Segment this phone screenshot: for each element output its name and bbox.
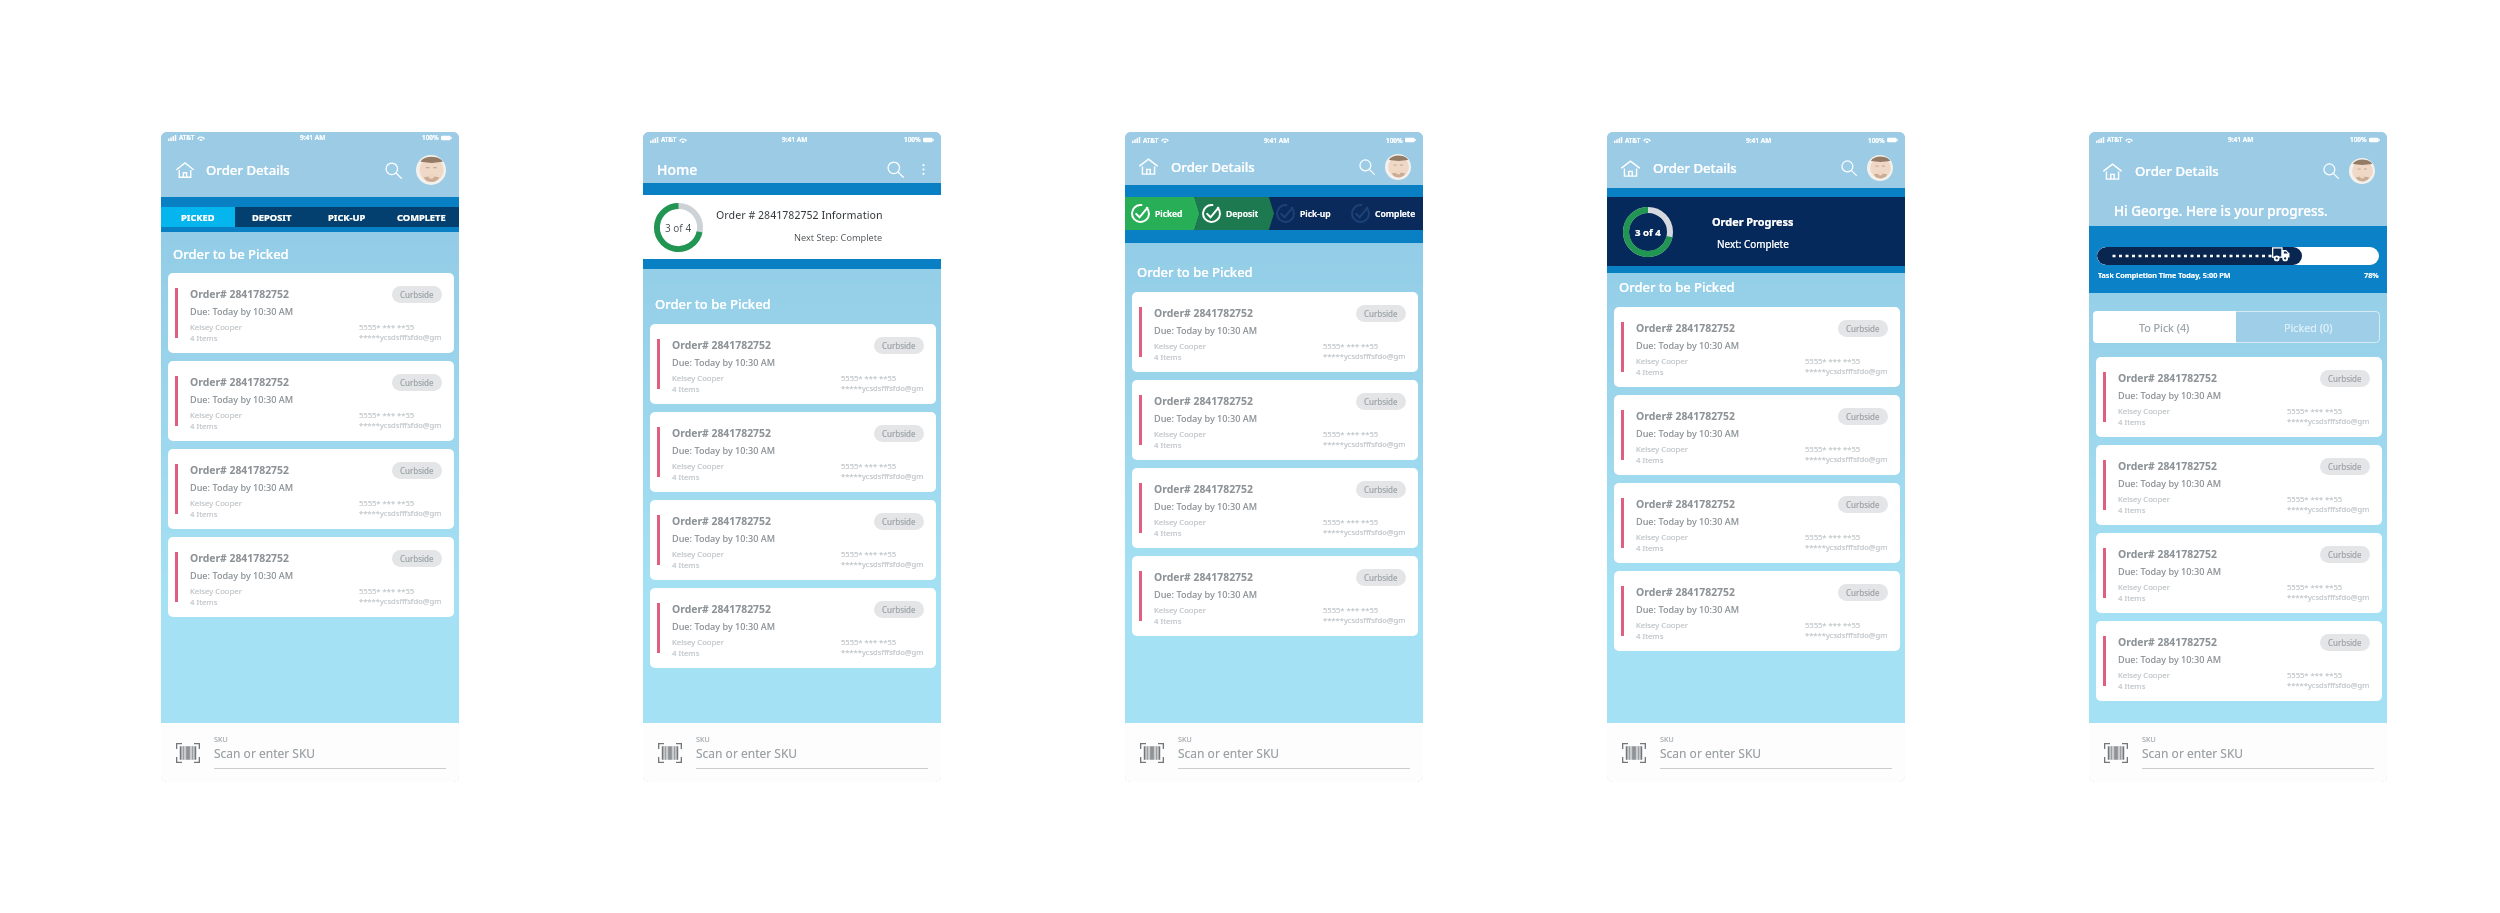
button[interactable]: Scan barcode — [2104, 743, 2128, 763]
button[interactable]: Picked (0) — [2236, 311, 2380, 343]
button[interactable]: More options — [917, 163, 930, 176]
button[interactable]: Complete — [1348, 197, 1423, 230]
staticText: Kelsey Cooper — [1636, 620, 1688, 631]
staticText: 5555* *** **55 — [841, 461, 897, 471]
button[interactable]: Search — [1841, 160, 1857, 176]
staticText: 5555* *** **55 — [1323, 517, 1379, 527]
button[interactable]: Pick-up — [1273, 197, 1348, 230]
staticText: *****ycsdsfffsfdo@gm — [1323, 615, 1406, 625]
staticText: Kelsey Cooper — [672, 637, 724, 648]
staticText: 5555* *** **55 — [1323, 605, 1379, 615]
button[interactable]: Search — [887, 161, 904, 178]
button[interactable]: Home — [1621, 159, 1640, 178]
staticText: 4 Items — [672, 384, 700, 395]
staticText: 100% — [2350, 135, 2367, 144]
staticText: Due: Today by 10:30 AM — [2118, 565, 2222, 577]
staticText: 4 Items — [190, 421, 218, 432]
staticText: Order# 2841782752 — [190, 287, 289, 301]
staticText: *****ycsdsfffsfdo@gm — [2287, 680, 2370, 690]
staticText: 5555* *** **55 — [2287, 582, 2343, 592]
staticText: AT&T — [179, 133, 195, 142]
staticText: Curbside — [1846, 323, 1880, 334]
button[interactable]: Picked — [1125, 197, 1199, 230]
button[interactable]: Order# 2841782752 — [1132, 468, 1418, 548]
button[interactable]: PICK-UP — [309, 207, 384, 227]
staticText: Kelsey Cooper — [672, 549, 724, 560]
button[interactable]: DEPOSIT — [235, 207, 309, 227]
staticText: 4 Items — [672, 648, 700, 659]
button[interactable]: Order# 2841782752 — [2096, 357, 2382, 437]
staticText: Due: Today by 10:30 AM — [190, 305, 294, 317]
staticText: 4 Items — [1636, 367, 1664, 378]
staticText: *****ycsdsfffsfdo@gm — [841, 647, 924, 657]
button[interactable]: PICKED — [161, 207, 235, 227]
button[interactable]: Order# 2841782752 — [168, 273, 454, 353]
button[interactable]: Scan barcode — [1607, 723, 1905, 782]
button[interactable]: Profile — [2349, 158, 2375, 184]
button[interactable]: Order# 2841782752 — [2096, 621, 2382, 701]
button[interactable]: Home — [2103, 162, 2122, 181]
button[interactable]: Order# 2841782752 — [1614, 483, 1900, 563]
button[interactable]: Order# 2841782752 — [168, 537, 454, 617]
button[interactable]: Order# 2841782752 — [1132, 380, 1418, 460]
staticText: 5555* *** **55 — [1805, 356, 1861, 366]
button[interactable]: Scan barcode — [643, 723, 941, 782]
staticText: Order to be Picked — [173, 245, 289, 263]
button[interactable]: Profile — [416, 155, 446, 185]
staticText: Due: Today by 10:30 AM — [1636, 515, 1740, 527]
button[interactable]: Search — [2323, 163, 2339, 179]
staticText: 100% — [904, 135, 921, 144]
button[interactable]: Scan barcode — [1622, 743, 1646, 763]
button[interactable]: Order# 2841782752 — [1614, 395, 1900, 475]
button[interactable]: Order# 2841782752 — [650, 500, 936, 580]
button[interactable]: Scan barcode — [1140, 743, 1164, 763]
staticText: Due: Today by 10:30 AM — [672, 444, 776, 456]
button[interactable]: Deposit — [1199, 197, 1273, 230]
staticText: Order# 2841782752 — [2118, 635, 2217, 649]
staticText: Order # 2841782752 Information — [716, 208, 883, 222]
button[interactable]: Order# 2841782752 — [1132, 292, 1418, 372]
button[interactable]: Scan barcode — [658, 743, 682, 763]
staticText: Due: Today by 10:30 AM — [1636, 339, 1740, 351]
button[interactable]: COMPLETE — [384, 207, 459, 227]
button[interactable]: Order# 2841782752 — [650, 412, 936, 492]
staticText: *****ycsdsfffsfdo@gm — [841, 383, 924, 393]
button[interactable]: Order# 2841782752 — [1132, 556, 1418, 636]
staticText: 4 Items — [1154, 616, 1182, 627]
staticText: Due: Today by 10:30 AM — [672, 532, 776, 544]
button[interactable]: Order# 2841782752 — [168, 449, 454, 529]
staticText: Order# 2841782752 — [672, 426, 771, 440]
button[interactable]: To Pick (4) — [2093, 311, 2236, 343]
button[interactable]: Scan barcode — [2089, 723, 2387, 782]
button[interactable]: Order# 2841782752 — [1614, 307, 1900, 387]
button[interactable]: Scan barcode — [161, 723, 459, 782]
button[interactable]: Order# 2841782752 — [650, 324, 936, 404]
staticText: Scan or enter SKU — [1178, 745, 1280, 761]
button[interactable]: Order# 2841782752 — [650, 588, 936, 668]
button[interactable]: Profile — [1867, 155, 1893, 181]
staticText: *****ycsdsfffsfdo@gm — [1805, 454, 1888, 464]
button[interactable]: Order# 2841782752 — [1614, 571, 1900, 651]
button[interactable]: Order# 2841782752 — [168, 361, 454, 441]
staticText: Kelsey Cooper — [1154, 429, 1206, 440]
staticText: 5555* *** **55 — [359, 322, 415, 332]
button[interactable]: Search — [385, 162, 402, 179]
button[interactable]: Scan barcode — [1125, 723, 1423, 782]
button[interactable]: Scan barcode — [176, 743, 200, 763]
button[interactable]: Search — [1359, 159, 1375, 175]
staticText: Due: Today by 10:30 AM — [190, 393, 294, 405]
button[interactable]: Profile — [1385, 154, 1411, 180]
button[interactable]: Order# 2841782752 — [2096, 533, 2382, 613]
staticText: SKU — [2142, 734, 2156, 744]
staticText: Curbside — [1364, 308, 1398, 319]
staticText: 100% — [422, 133, 439, 142]
staticText: DEPOSIT — [252, 211, 292, 224]
staticText: SKU — [214, 734, 228, 744]
staticText: Order# 2841782752 — [1154, 306, 1253, 320]
button[interactable]: Order# 2841782752 — [2096, 445, 2382, 525]
staticText: Due: Today by 10:30 AM — [1636, 427, 1740, 439]
button[interactable]: Home — [1139, 157, 1158, 176]
button[interactable]: Home — [176, 161, 194, 179]
staticText: 9:41 AM — [1264, 136, 1290, 145]
staticText: 4 Items — [190, 597, 218, 608]
